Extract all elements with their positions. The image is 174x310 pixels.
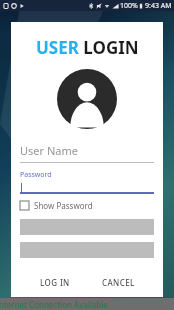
button[interactable]: User Name [20,143,154,163]
staticText: USER LOGIN [36,36,139,59]
staticText: nternet Connection Available [0,299,108,310]
staticText: User Name [20,143,78,158]
staticText: Show Password [34,200,93,211]
staticText: 9:43 AM [145,1,172,11]
button[interactable]: Password [20,170,154,194]
staticText: CANCEL [102,277,135,288]
button[interactable]: LOG IN [34,272,76,293]
button[interactable]: CANCEL [96,272,141,293]
button[interactable]: Show Password [20,200,93,211]
staticText: Password [20,170,52,180]
staticText: LOG IN [40,277,70,288]
staticText: 100% [120,1,138,11]
